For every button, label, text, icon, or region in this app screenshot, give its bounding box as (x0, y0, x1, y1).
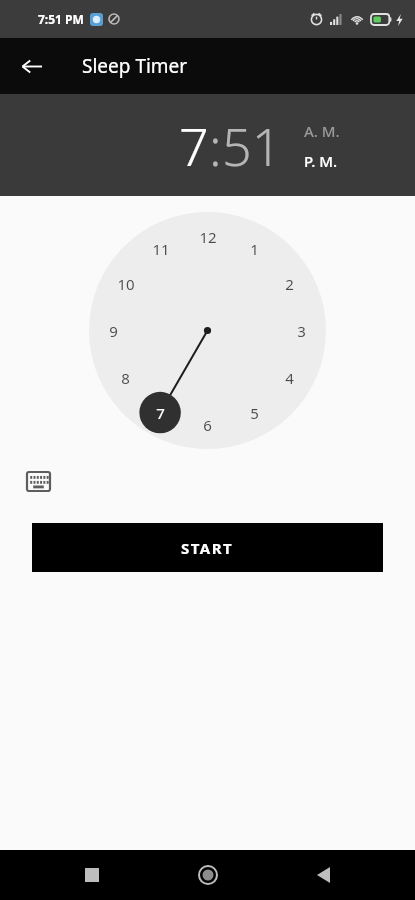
staticText: Sleep Timer (82, 53, 188, 79)
staticText: 7 (156, 403, 165, 423)
staticText: 11 (152, 239, 170, 259)
button[interactable]: Recents (68, 851, 116, 899)
staticText: 3 (297, 321, 306, 341)
staticText: 7:51 PM (38, 11, 84, 27)
staticText: 6 (203, 415, 212, 435)
button[interactable]: Home (184, 851, 232, 899)
button[interactable]: START (32, 523, 383, 572)
staticText: : (209, 110, 222, 181)
staticText: 12 (199, 227, 217, 247)
button[interactable]: 51 (222, 110, 282, 181)
button[interactable]: Back (13, 48, 49, 84)
staticText: 1 (250, 239, 259, 259)
button[interactable]: A. M. (304, 121, 340, 141)
button[interactable]: Select hour (89, 212, 326, 449)
button[interactable]: Back (299, 851, 347, 899)
button[interactable]: 7 (179, 110, 209, 181)
staticText: START (181, 538, 234, 558)
staticText: 2 (285, 274, 294, 294)
staticText: 9 (109, 321, 118, 341)
button[interactable]: P. M. (304, 151, 338, 171)
staticText: 10 (117, 274, 135, 294)
button[interactable]: Switch to keyboard input (20, 463, 56, 499)
staticText: 8 (121, 368, 130, 388)
staticText: 5 (250, 403, 259, 423)
staticText: 4 (285, 368, 294, 388)
